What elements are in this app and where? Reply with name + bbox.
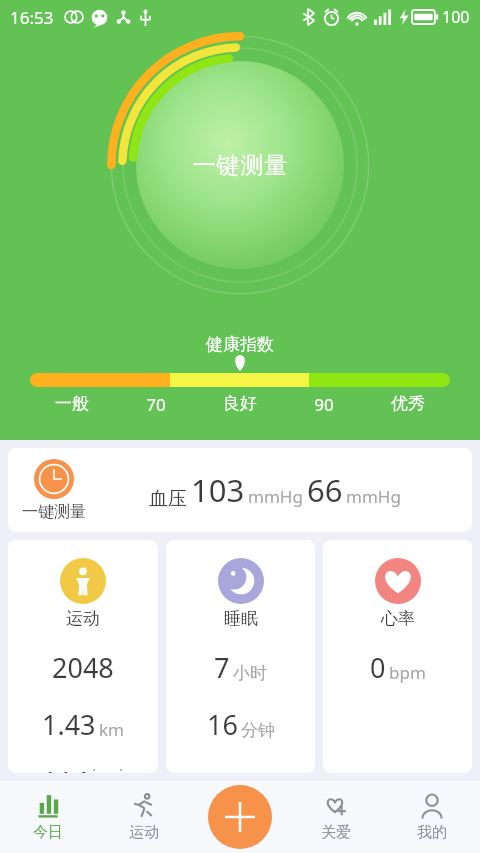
staticText: 一键测量 — [22, 502, 86, 522]
staticText: 小时 — [233, 663, 267, 684]
button[interactable]: 关爱 — [288, 781, 384, 853]
staticText: 良好 — [198, 393, 282, 414]
staticText: 7 — [214, 649, 230, 686]
button[interactable]: 添加 — [208, 785, 272, 849]
staticText: 健康指数 — [206, 334, 274, 355]
staticText: 心率 — [381, 608, 415, 629]
staticText: 一般 — [30, 393, 114, 414]
staticText: km — [99, 718, 124, 741]
staticText: 100 — [442, 6, 470, 28]
staticText: 优秀 — [366, 393, 450, 414]
button[interactable]: 一键测量 — [122, 47, 358, 283]
staticText: 66 — [307, 469, 343, 511]
staticText: 16 — [207, 706, 238, 743]
staticText: 2048 — [52, 649, 114, 686]
staticText: 0 — [370, 649, 386, 686]
button[interactable]: 今日 — [0, 781, 96, 853]
staticText: 1.43 — [42, 706, 96, 743]
staticText: 运动 — [129, 823, 159, 842]
staticText: 睡眠 — [224, 608, 258, 629]
staticText: 关爱 — [321, 823, 351, 842]
button[interactable]: 心率 — [323, 540, 472, 773]
button[interactable]: 我的 — [384, 781, 480, 853]
staticText: 70 — [114, 393, 198, 416]
staticText: mmHg — [346, 485, 401, 508]
staticText: mmHg — [248, 485, 303, 508]
button[interactable]: 一键测量 — [8, 448, 472, 532]
staticText: 今日 — [33, 823, 63, 842]
staticText: 16:53 — [10, 6, 54, 29]
staticText: 103 — [191, 469, 245, 511]
staticText: 分钟 — [241, 720, 275, 741]
staticText: 114 — [42, 763, 89, 773]
staticText: kcal — [92, 763, 124, 771]
staticText: 一键测量 — [192, 151, 288, 180]
staticText: bpm — [389, 661, 426, 684]
button[interactable]: 运动 — [96, 781, 192, 853]
staticText: 血压 — [149, 487, 187, 511]
button[interactable]: 运动 — [8, 540, 158, 773]
button[interactable]: 睡眠 — [166, 540, 315, 773]
staticText: 我的 — [417, 823, 447, 842]
staticText: 90 — [282, 393, 366, 416]
staticText: 运动 — [66, 608, 100, 629]
